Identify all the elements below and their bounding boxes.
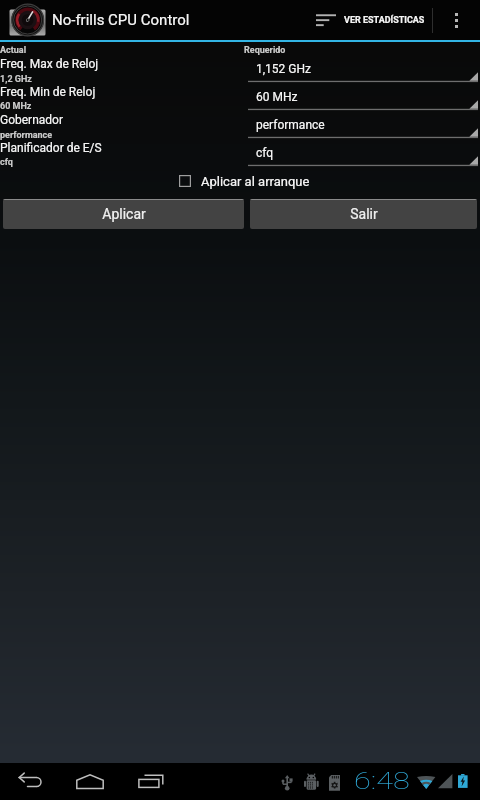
button[interactable]: No-frills CPU Control — [0, 0, 194, 40]
button[interactable]: 1,152 GHz — [248, 56, 478, 84]
button[interactable]: 60 MHz — [248, 84, 478, 112]
button[interactable]: Aplicar al arranque — [179, 171, 310, 191]
staticText: Aplicar al arranque — [201, 174, 310, 189]
staticText: performance — [256, 118, 325, 132]
staticText: Freq. Min de Reloj — [0, 85, 96, 99]
staticText: cfq — [256, 146, 274, 160]
staticText: performance — [0, 130, 53, 141]
staticText: 60 MHz — [256, 90, 298, 104]
staticText: Gobernador — [0, 113, 64, 127]
staticText: 60 MHz — [0, 101, 32, 112]
staticText: Aplicar — [102, 206, 146, 222]
button[interactable]: cfq — [248, 140, 478, 168]
staticText: 1,2 GHz — [0, 74, 32, 85]
staticText: Salir — [350, 206, 378, 222]
staticText: Planificador de E/S — [0, 141, 102, 155]
button[interactable]: Salir — [250, 199, 477, 229]
staticText: 6:48 — [354, 768, 410, 795]
staticText: Requerido — [244, 45, 286, 56]
staticText: VER ESTADÍSTICAS — [344, 15, 425, 26]
staticText: 1,152 GHz — [256, 62, 312, 76]
staticText: cfq — [0, 157, 13, 168]
staticText: Freq. Max de Reloj — [0, 57, 99, 71]
staticText: Actual — [0, 45, 27, 56]
button[interactable]: Inicio — [65, 763, 115, 800]
button[interactable]: Más opciones — [433, 0, 480, 40]
button[interactable]: Atrás — [5, 763, 55, 800]
staticText: No-frills CPU Control — [52, 11, 190, 29]
button[interactable]: Aplicar — [3, 199, 244, 229]
button[interactable]: Recientes — [126, 763, 176, 800]
button[interactable]: VER ESTADÍSTICAS — [307, 0, 432, 40]
button[interactable]: performance — [248, 112, 478, 140]
